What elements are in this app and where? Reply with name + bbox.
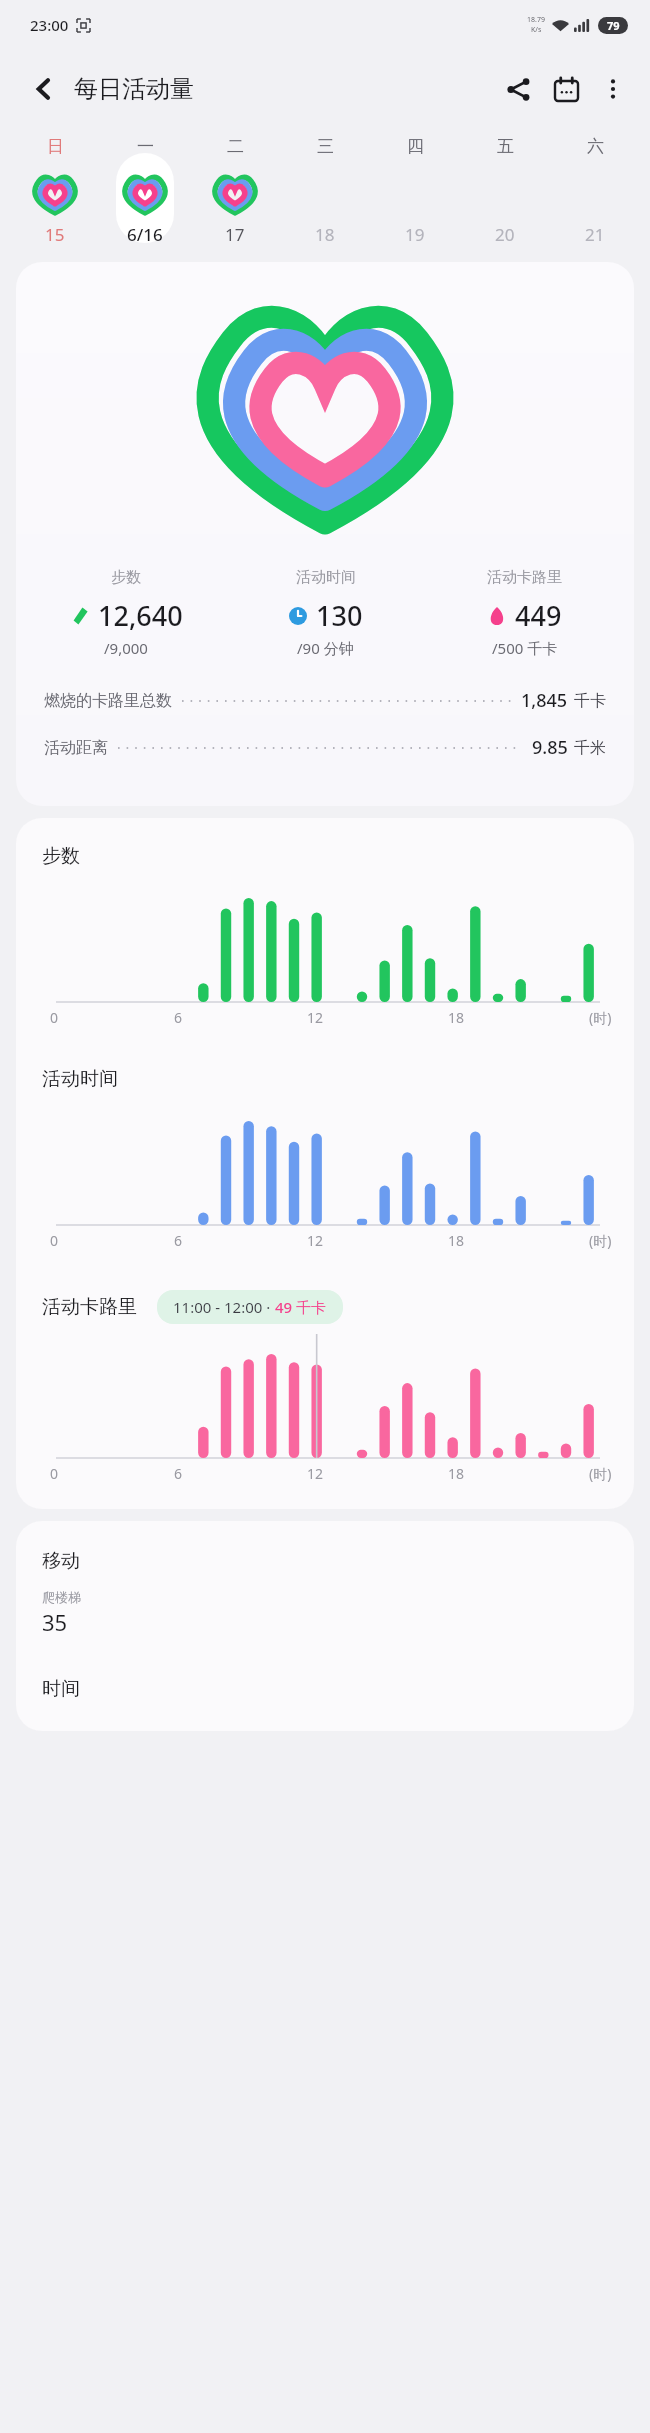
- staticText: /90 分钟: [297, 638, 354, 658]
- staticText: 11:00 - 12:00 ·: [173, 1297, 275, 1317]
- staticText: 五: [497, 136, 514, 157]
- staticText: 日: [47, 136, 64, 157]
- staticText: 19: [405, 223, 425, 246]
- staticText: 6: [174, 1464, 183, 1483]
- staticText: 12: [307, 1008, 324, 1027]
- button[interactable]: 燃烧的卡路里总数: [44, 688, 606, 713]
- staticText: /500 千卡: [492, 638, 558, 658]
- staticText: 二: [227, 136, 244, 157]
- staticText: 6: [174, 1231, 183, 1250]
- staticText: 每日活动量: [74, 74, 194, 104]
- staticText: 1,845: [521, 688, 568, 713]
- staticText: 12: [307, 1464, 324, 1483]
- staticText: 12,640: [98, 597, 183, 634]
- staticText: 0: [50, 1231, 59, 1250]
- staticText: (时): [589, 1231, 612, 1250]
- staticText: 活动卡路里: [487, 568, 562, 587]
- staticText: 千米: [574, 738, 606, 758]
- staticText: 六: [587, 136, 604, 157]
- staticText: 130: [316, 597, 363, 634]
- staticText: /9,000: [104, 638, 148, 658]
- staticText: 6: [174, 1008, 183, 1027]
- staticText: 0: [50, 1464, 59, 1483]
- staticText: 21: [585, 223, 605, 246]
- button[interactable]: 五: [460, 135, 550, 250]
- button[interactable]: 活动时间: [16, 1041, 634, 1264]
- staticText: 49 千卡: [275, 1297, 327, 1317]
- button[interactable]: 三: [280, 135, 370, 250]
- button[interactable]: 日: [10, 135, 100, 250]
- staticText: 活动时间: [296, 568, 356, 587]
- staticText: 活动时间: [42, 1067, 118, 1091]
- staticText: 移动: [42, 1549, 80, 1573]
- staticText: 步数: [42, 844, 80, 868]
- staticText: 79: [607, 18, 620, 33]
- staticText: 20: [495, 223, 515, 246]
- button[interactable]: 移动: [16, 1521, 634, 1731]
- button[interactable]: More options: [590, 66, 636, 112]
- button[interactable]: 六: [550, 135, 640, 250]
- staticText: 18: [448, 1008, 465, 1027]
- staticText: 0: [50, 1008, 59, 1027]
- staticText: (时): [589, 1008, 612, 1027]
- staticText: 三: [317, 136, 334, 157]
- staticText: 千卡: [574, 691, 606, 711]
- button[interactable]: 活动卡路里: [425, 568, 624, 658]
- button[interactable]: Calendar: [542, 65, 590, 113]
- staticText: 9.85: [532, 735, 568, 760]
- button[interactable]: 活动卡路里: [16, 1264, 634, 1497]
- staticText: 35: [42, 1607, 68, 1637]
- button[interactable]: 一: [100, 135, 190, 250]
- staticText: 活动距离: [44, 738, 108, 758]
- button[interactable]: 四: [370, 135, 460, 250]
- staticText: 18: [448, 1464, 465, 1483]
- button[interactable]: 活动时间: [226, 568, 425, 658]
- staticText: 燃烧的卡路里总数: [44, 691, 172, 711]
- staticText: 活动卡路里: [42, 1295, 137, 1319]
- button[interactable]: 步数: [16, 262, 634, 806]
- button[interactable]: 步数: [26, 568, 226, 658]
- staticText: 17: [225, 223, 245, 246]
- staticText: 爬楼梯: [42, 1589, 81, 1605]
- staticText: 449: [515, 597, 562, 634]
- button[interactable]: 活动距离: [44, 735, 606, 760]
- button[interactable]: 步数: [16, 818, 634, 1041]
- staticText: 23:00: [30, 15, 69, 35]
- staticText: 18.79: [527, 15, 545, 25]
- staticText: 时间: [42, 1677, 80, 1701]
- button[interactable]: 二: [190, 135, 280, 250]
- staticText: 18: [448, 1231, 465, 1250]
- staticText: (时): [589, 1464, 612, 1483]
- staticText: 一: [137, 136, 154, 157]
- button[interactable]: Back: [22, 67, 66, 111]
- staticText: 步数: [111, 568, 141, 587]
- staticText: 四: [407, 136, 424, 157]
- staticText: 12: [307, 1231, 324, 1250]
- staticText: 18: [315, 223, 335, 246]
- staticText: K/s: [531, 25, 542, 35]
- button[interactable]: Share: [494, 65, 542, 113]
- staticText: 15: [45, 223, 65, 246]
- staticText: 6/16: [127, 223, 163, 246]
